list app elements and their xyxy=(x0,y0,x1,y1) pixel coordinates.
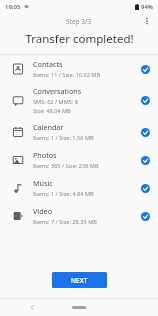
staticText: Contacts xyxy=(33,59,63,69)
staticText: Transfer completed! xyxy=(25,31,134,47)
staticText: 94% xyxy=(141,3,153,11)
staticText: NEXT xyxy=(71,276,88,285)
button[interactable]: Music xyxy=(0,174,158,202)
button[interactable]: Back xyxy=(24,299,40,315)
button[interactable]: Calendar xyxy=(0,118,158,146)
button[interactable]: Home xyxy=(68,301,90,313)
button[interactable]: NEXT xyxy=(52,272,107,288)
staticText: Photos xyxy=(33,150,57,160)
staticText: Conversations xyxy=(33,86,82,96)
button[interactable]: Contacts xyxy=(0,55,158,83)
staticText: Items: 11 / Size: 10.62 MB xyxy=(33,71,101,79)
staticText: Items: 365 / Size: 236 MB xyxy=(33,162,99,170)
staticText: Items: 7 / Size: 28.35 MB xyxy=(33,218,97,226)
staticText: Video xyxy=(33,206,52,216)
staticText: Step 3/3 xyxy=(66,17,92,26)
staticText: Items: 1 / Size: 1.56 MB xyxy=(33,134,94,142)
staticText: Size: 48.04 MB xyxy=(33,107,71,115)
staticText: SMS: 62 / MMS: 8 xyxy=(33,98,78,106)
staticText: 19:05 xyxy=(5,3,21,11)
staticText: Items: 1 / Size: 4.84 MB xyxy=(33,190,94,198)
button[interactable]: Photos xyxy=(0,146,158,174)
button[interactable]: Video xyxy=(0,202,158,230)
button[interactable]: Conversations xyxy=(0,83,158,118)
staticText: Music xyxy=(33,178,53,188)
staticText: Calendar xyxy=(33,122,64,132)
button[interactable]: More options xyxy=(140,14,154,28)
